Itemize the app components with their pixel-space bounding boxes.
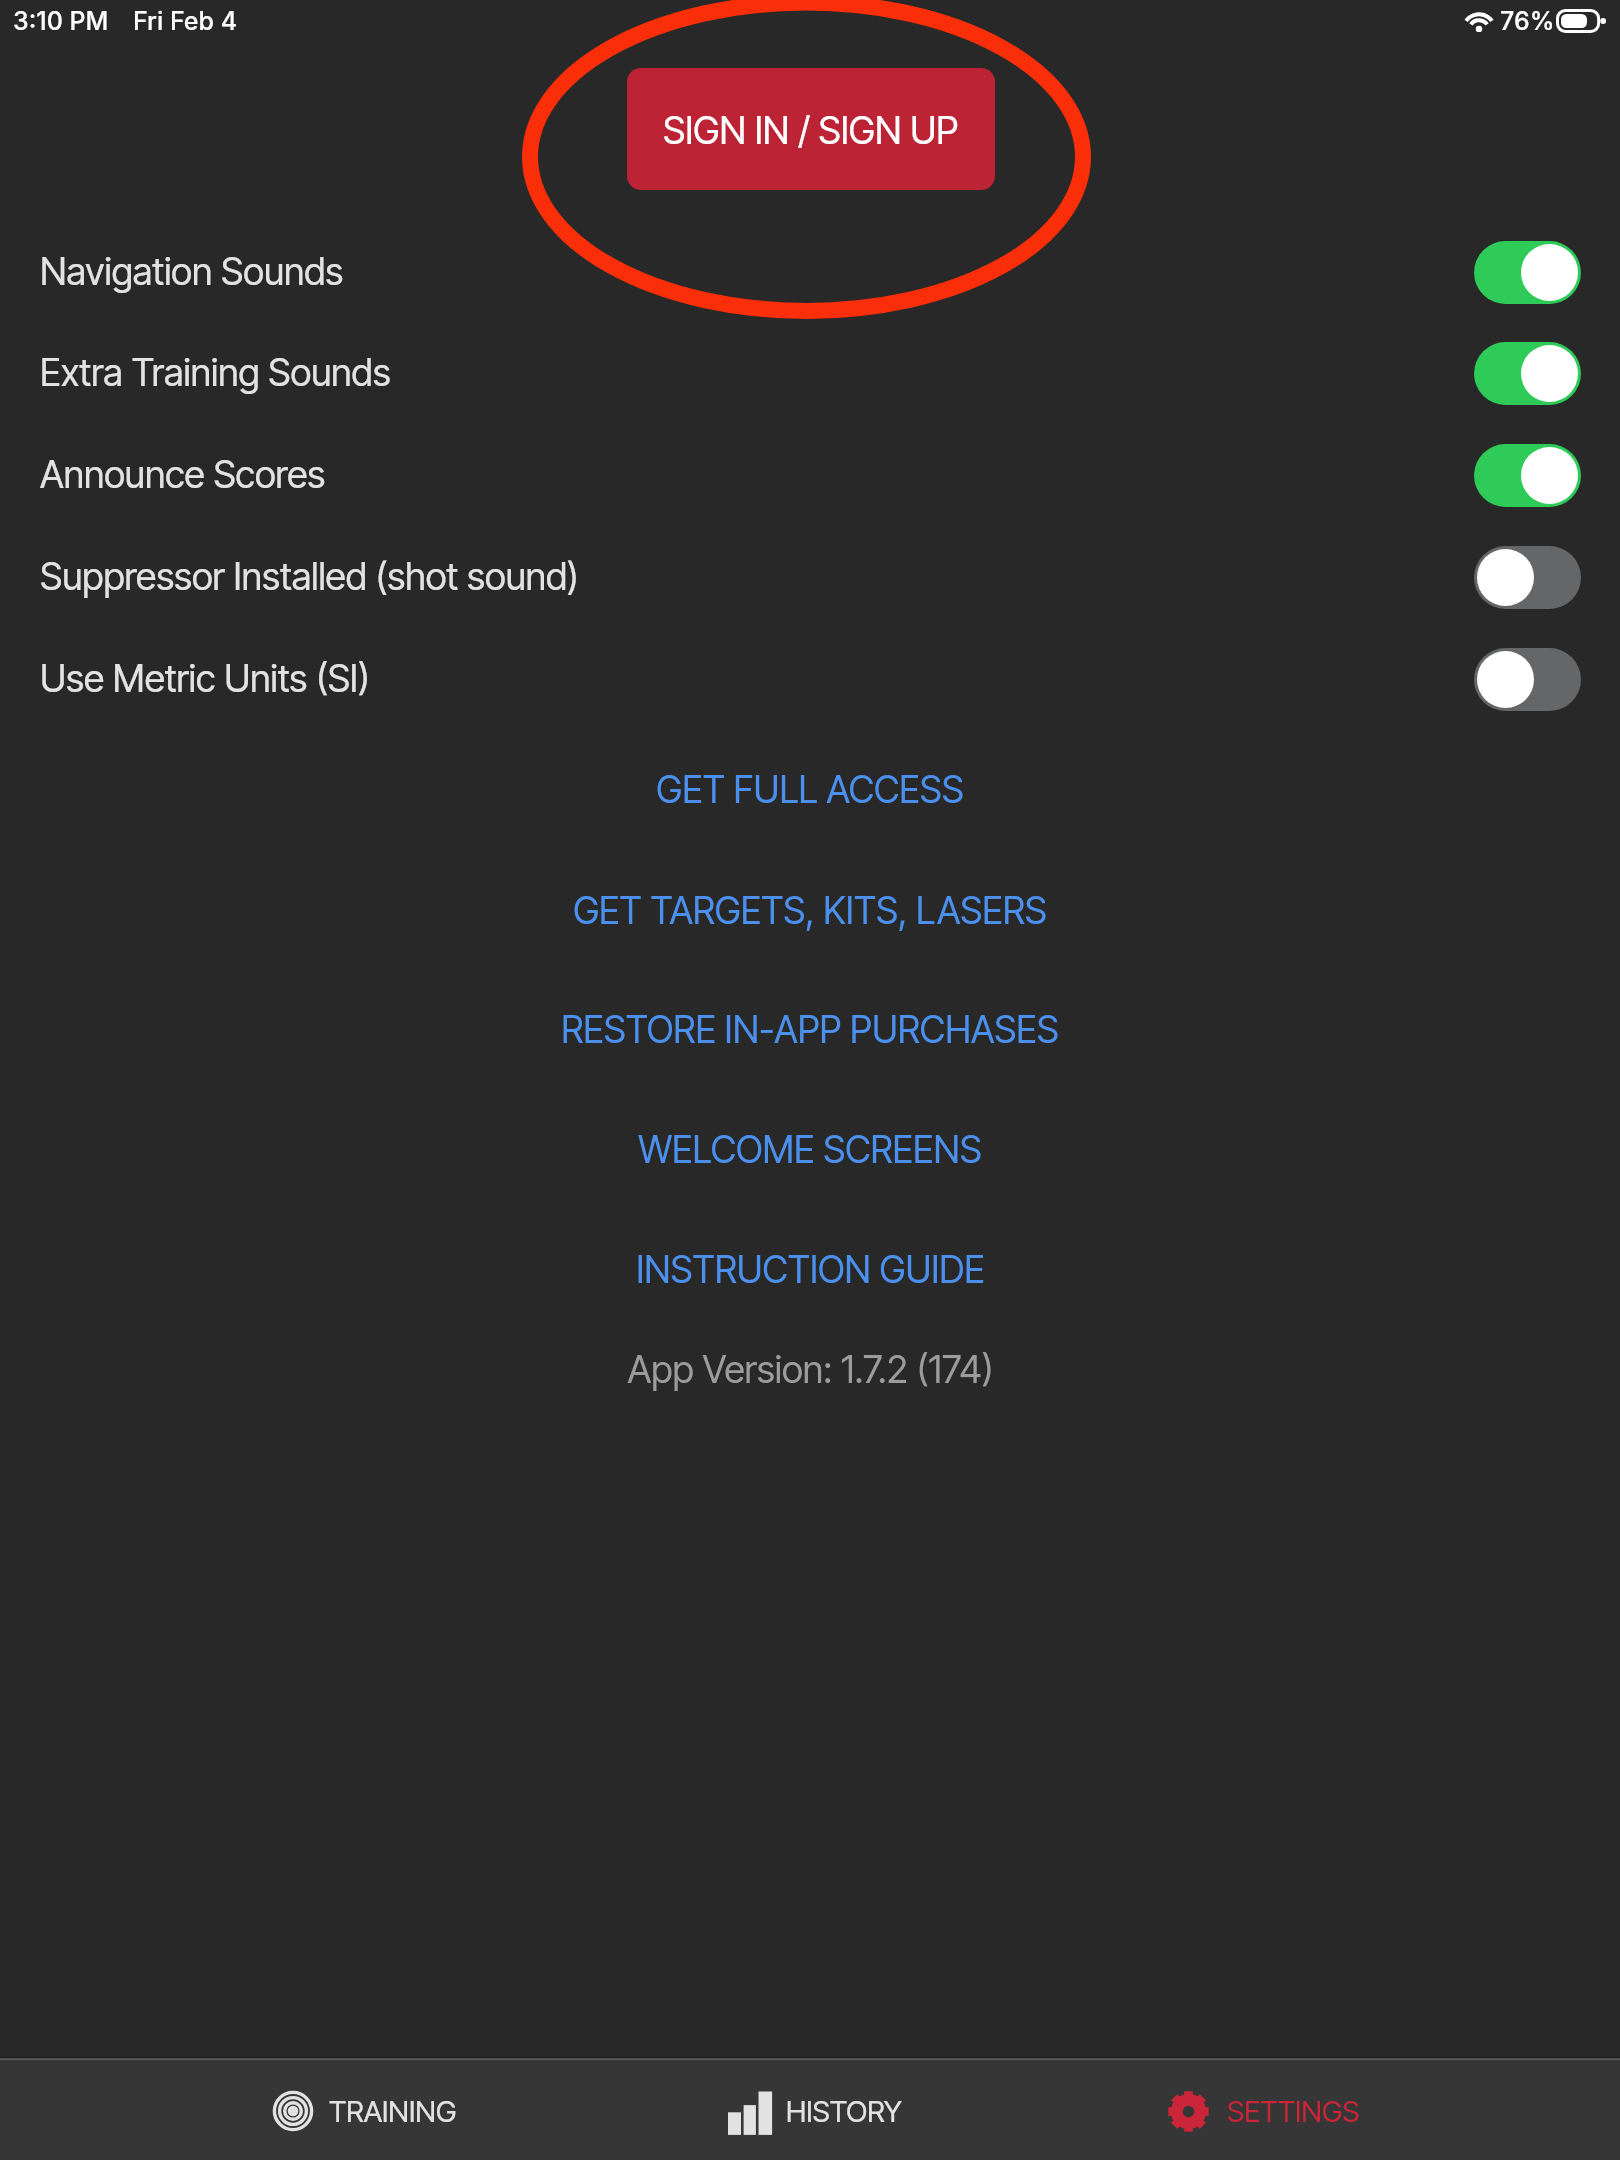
staticText: Use Metric Units (SI)	[40, 656, 370, 701]
button[interactable]: Announce Scores	[0, 424, 1620, 526]
staticText: SETTINGS	[1227, 2094, 1360, 2129]
button[interactable]: Extra Training Sounds	[0, 322, 1620, 424]
staticText: Announce Scores	[40, 452, 326, 497]
button[interactable]: SIGN IN / SIGN UP	[627, 68, 995, 190]
staticText: INSTRUCTION GUIDE	[636, 1247, 985, 1292]
staticText: TRAINING	[329, 2094, 457, 2129]
button[interactable]: INSTRUCTION GUIDE	[0, 1221, 1620, 1321]
staticText: Suppressor Installed (shot sound)	[40, 554, 579, 599]
staticText: WELCOME SCREENS	[638, 1127, 982, 1172]
button[interactable]: History	[694, 2057, 937, 2160]
button[interactable]: GET TARGETS, KITS, LASERS	[0, 862, 1620, 962]
staticText: App Version: 1.7.2 (174)	[627, 1346, 994, 1392]
staticText: 3:10 PM	[13, 6, 109, 36]
staticText: Extra Training Sounds	[40, 350, 391, 395]
button[interactable]: GET FULL ACCESS	[0, 741, 1620, 841]
button[interactable]: Settings	[1135, 2057, 1391, 2160]
staticText: SIGN IN / SIGN UP	[663, 108, 959, 153]
button[interactable]: Use Metric Units (SI)	[0, 628, 1620, 730]
staticText: HISTORY	[786, 2094, 902, 2129]
button[interactable]: Training	[238, 2057, 491, 2160]
button[interactable]: Suppressor Installed (shot sound)	[0, 526, 1620, 628]
staticText: GET TARGETS, KITS, LASERS	[573, 888, 1047, 933]
staticText: 76%	[1500, 6, 1555, 36]
staticText: Navigation Sounds	[40, 249, 344, 294]
button[interactable]: WELCOME SCREENS	[0, 1101, 1620, 1201]
button[interactable]: RESTORE IN-APP PURCHASES	[0, 981, 1620, 1081]
staticText: Fri Feb 4	[133, 6, 238, 36]
staticText: GET FULL ACCESS	[656, 767, 964, 812]
staticText: RESTORE IN-APP PURCHASES	[561, 1007, 1059, 1052]
button[interactable]: Navigation Sounds	[0, 221, 1620, 323]
